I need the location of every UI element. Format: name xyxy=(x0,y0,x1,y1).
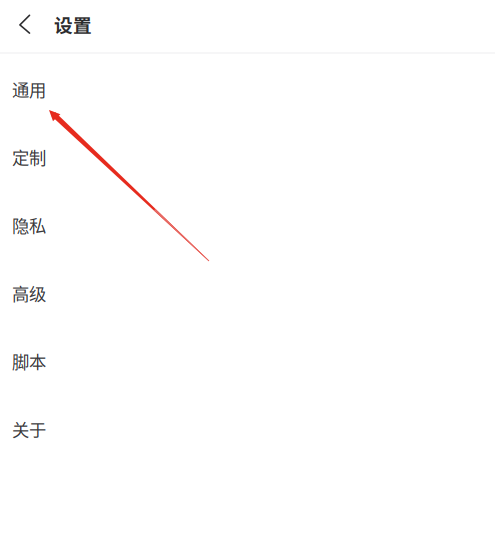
staticText: 关于 xyxy=(12,416,46,442)
button[interactable]: 脚本 xyxy=(0,327,495,395)
staticText: 设置 xyxy=(54,10,92,37)
button[interactable]: 关于 xyxy=(0,395,495,463)
button[interactable]: 隐私 xyxy=(0,191,495,259)
staticText: 定制 xyxy=(12,144,46,170)
button[interactable]: 高级 xyxy=(0,259,495,327)
button[interactable]: Back xyxy=(8,10,42,42)
staticText: 高级 xyxy=(12,280,46,306)
button[interactable]: 定制 xyxy=(0,123,495,191)
button[interactable]: 通用 xyxy=(0,55,495,123)
staticText: 脚本 xyxy=(12,348,46,374)
staticText: 通用 xyxy=(12,76,46,102)
staticText: 隐私 xyxy=(12,212,46,238)
